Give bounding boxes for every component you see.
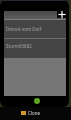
button[interactable]: Add (57, 10, 67, 18)
button[interactable]: Dennis vom Dorf (4, 20, 66, 38)
button[interactable]: Sturm65882 (4, 37, 66, 55)
staticText: Dennis vom Dorf (6, 26, 42, 32)
staticText: Sturm65882 (6, 43, 32, 49)
staticText: Clone (28, 110, 41, 116)
